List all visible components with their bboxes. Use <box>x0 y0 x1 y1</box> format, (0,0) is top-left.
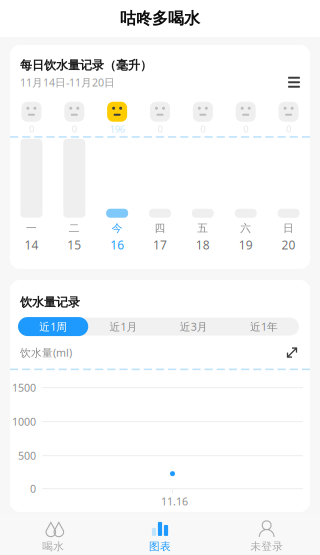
staticText: 日 <box>283 222 294 235</box>
staticText: 196 <box>110 123 125 135</box>
staticText: 0 <box>72 123 77 135</box>
staticText: 六 <box>240 222 251 235</box>
button[interactable]: 近1年 <box>229 317 299 336</box>
staticText: 0 <box>157 123 162 135</box>
button[interactable]: 喝水 <box>0 511 107 555</box>
staticText: 15 <box>67 237 81 253</box>
staticText: 1000 <box>12 415 36 429</box>
button[interactable]: 图表 <box>107 511 213 555</box>
staticText: 近1月 <box>109 319 137 334</box>
staticText: 19 <box>239 237 253 253</box>
staticText: 16 <box>110 237 124 253</box>
staticText: 饮水量记录 <box>20 295 80 309</box>
staticText: 18 <box>196 237 210 253</box>
staticText: 今 <box>112 222 123 235</box>
staticText: 喝水 <box>42 540 64 553</box>
staticText: 未登录 <box>250 540 283 553</box>
staticText: 四 <box>154 222 165 235</box>
staticText: 17 <box>153 237 167 253</box>
button[interactable]: 未登录 <box>213 511 320 555</box>
staticText: 0 <box>29 123 34 135</box>
button[interactable]: 近3月 <box>158 317 229 336</box>
staticText: 0 <box>243 123 248 135</box>
staticText: 近1周 <box>39 319 67 334</box>
staticText: 近1年 <box>250 319 278 334</box>
staticText: 一 <box>26 222 37 235</box>
button[interactable]: 近1月 <box>88 317 158 336</box>
staticText: 图表 <box>149 540 171 553</box>
staticText: 0 <box>286 123 291 135</box>
staticText: 五 <box>197 222 208 235</box>
staticText: 0 <box>200 123 205 135</box>
staticText: 咕咚多喝水 <box>120 9 200 28</box>
staticText: 二 <box>69 222 80 235</box>
staticText: 1500 <box>12 381 36 395</box>
staticText: 500 <box>18 449 36 463</box>
button[interactable]: More options <box>283 73 305 92</box>
button[interactable]: Expand chart <box>280 344 304 362</box>
staticText: 近3月 <box>180 319 208 334</box>
staticText: 每日饮水量记录（毫升） <box>20 58 152 73</box>
staticText: 20 <box>282 237 296 253</box>
staticText: 11.16 <box>161 494 188 508</box>
staticText: 0 <box>30 482 36 496</box>
staticText: 14 <box>24 237 38 253</box>
staticText: 饮水量(ml) <box>20 345 72 360</box>
staticText: 11月14日-11月20日 <box>20 75 115 89</box>
button[interactable]: 近1周 <box>18 317 88 336</box>
